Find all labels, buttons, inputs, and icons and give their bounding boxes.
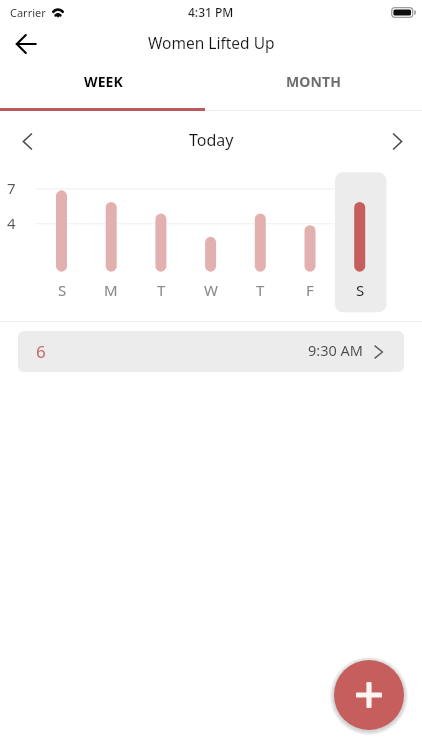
- staticText: 4:31 PM: [188, 4, 234, 20]
- staticText: Today: [189, 129, 234, 151]
- staticText: S: [58, 280, 67, 300]
- staticText: 7: [7, 178, 16, 198]
- staticText: W: [204, 280, 218, 300]
- staticText: S: [356, 280, 365, 300]
- button[interactable]: Next week: [380, 124, 414, 158]
- staticText: M: [104, 280, 118, 300]
- staticText: WEEK: [84, 72, 123, 91]
- staticText: Carrier: [10, 5, 46, 20]
- button[interactable]: 6: [18, 331, 404, 372]
- button[interactable]: Previous week: [10, 124, 44, 158]
- staticText: 9:30 AM: [308, 340, 363, 360]
- staticText: F: [306, 280, 314, 300]
- button[interactable]: Add: [334, 660, 404, 730]
- staticText: 6: [36, 340, 46, 363]
- staticText: T: [256, 280, 265, 300]
- staticText: MONTH: [286, 72, 341, 91]
- staticText: 4: [7, 213, 16, 233]
- button[interactable]: MONTH: [211, 62, 422, 108]
- staticText: Women Lifted Up: [148, 32, 275, 53]
- button[interactable]: Back: [10, 28, 42, 60]
- staticText: T: [157, 280, 166, 300]
- button[interactable]: WEEK: [0, 62, 211, 108]
